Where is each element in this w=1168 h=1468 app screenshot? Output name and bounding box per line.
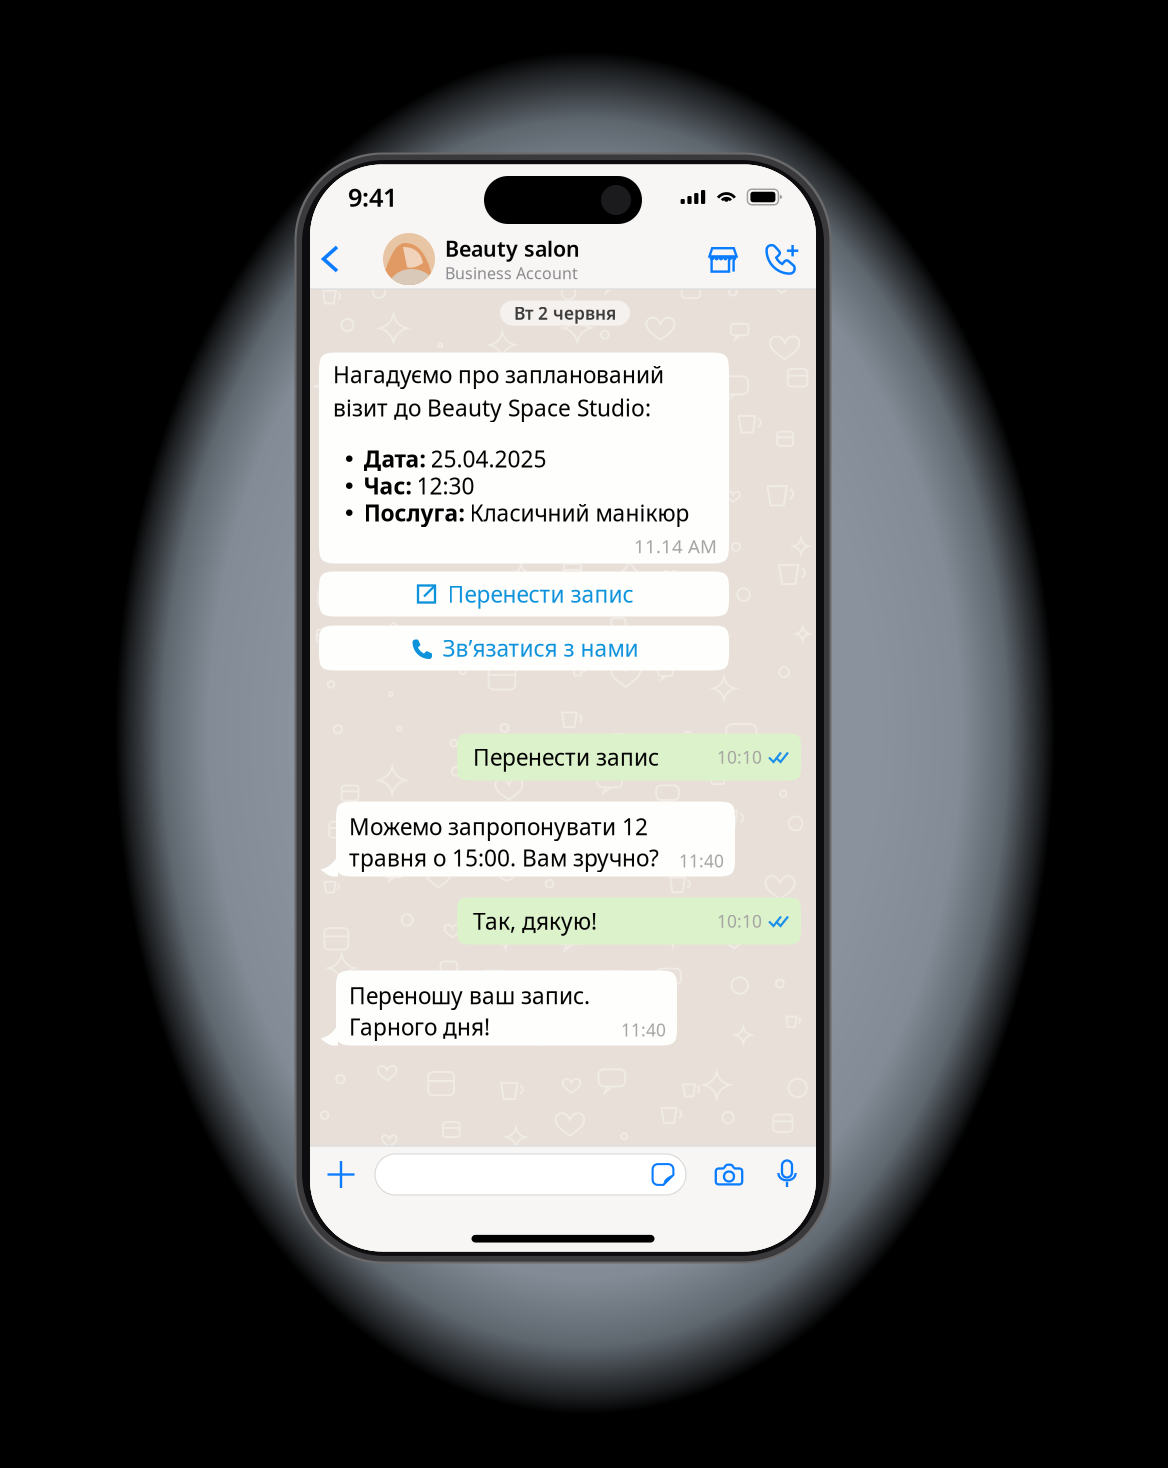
button[interactable]: Business catalog <box>708 245 738 273</box>
button[interactable]: Voice message <box>776 1159 798 1189</box>
button[interactable]: Attach <box>327 1154 355 1195</box>
staticText: 11:40 <box>621 1018 666 1041</box>
button[interactable]: Call <box>764 243 800 275</box>
staticText: травня о 15:00. Вам зручно? <box>349 843 659 873</box>
staticText: 10:10 <box>717 745 762 768</box>
staticText: Перенести запис <box>447 579 633 609</box>
staticText: Час: <box>363 471 411 501</box>
staticText: 11:40 <box>679 849 724 872</box>
staticText: 10:10 <box>717 909 762 932</box>
staticText: 25.04.2025 <box>430 444 546 474</box>
staticText: Beauty salon <box>445 234 580 262</box>
staticText: Переношу ваш запис. <box>349 980 590 1011</box>
staticText: 12:30 <box>416 471 474 501</box>
staticText: Нагадуємо про запланований <box>333 359 664 390</box>
staticText: Так, дякую! <box>473 906 597 936</box>
staticText: Перенести запис <box>473 742 659 772</box>
staticText: 9:41 <box>348 180 397 214</box>
button[interactable]: Перенести запис <box>319 571 729 616</box>
staticText: Вт 2 червня <box>514 301 616 324</box>
staticText: Зв’язатися з нами <box>442 633 638 663</box>
staticText: Гарного дня! <box>349 1012 490 1042</box>
staticText: Послуга: <box>363 498 464 528</box>
button[interactable]: Camera <box>714 1161 744 1187</box>
staticText: Класичний манікюр <box>469 498 689 528</box>
staticText: Можемо запропонувати 12 <box>349 811 648 842</box>
staticText: візит до Beauty Space Studio: <box>333 393 651 423</box>
staticText: Дата: <box>363 444 425 474</box>
button[interactable]: Зв’язатися з нами <box>319 625 729 670</box>
button[interactable]: Message <box>375 1154 686 1195</box>
staticText: Business Account <box>445 262 578 284</box>
staticText: 11.14 AM <box>634 534 717 558</box>
button[interactable]: Back <box>320 237 342 281</box>
